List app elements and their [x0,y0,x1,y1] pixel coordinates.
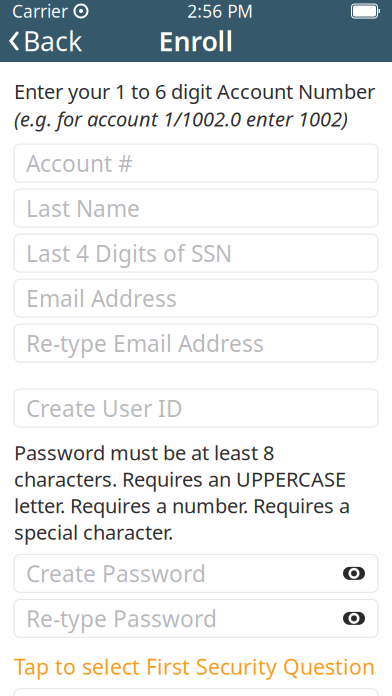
staticText: Enter your 1 to 6 digit Account Number [14,78,375,105]
staticText: Tap to select First Security Question [14,652,375,681]
staticText: Email Address [26,283,177,313]
button[interactable]: Create Password [14,554,378,592]
staticText: Enroll [158,23,233,59]
staticText: Carrier [12,0,68,22]
staticText: Account # [26,148,133,178]
staticText: Re-type Password [26,603,217,633]
button[interactable]: Back [0,22,90,60]
button[interactable]: Tap to select First Security Question [14,652,378,681]
staticText: 2:56 PM [187,0,253,22]
staticText: Password must be at least 8 characters. … [14,439,350,545]
button[interactable]: Re-type Email Address [14,324,378,362]
staticText: Re-type Email Address [26,328,264,358]
staticText: Last 4 Digits of SSN [26,238,232,268]
button[interactable]: Account # [14,144,378,182]
button[interactable]: Last 4 Digits of SSN [14,234,378,272]
button[interactable]: Re-type Password [14,599,378,637]
staticText: (e.g. for account 1/1002.0 enter 1002) [14,106,348,132]
staticText: Create User ID [26,393,183,423]
staticText: Last Name [26,193,140,223]
staticText: Create Password [26,558,206,588]
button[interactable]: Email Address [14,279,378,317]
staticText: Back [23,23,82,59]
button[interactable]: Last Name [14,189,378,227]
button[interactable]: Create User ID [14,389,378,427]
